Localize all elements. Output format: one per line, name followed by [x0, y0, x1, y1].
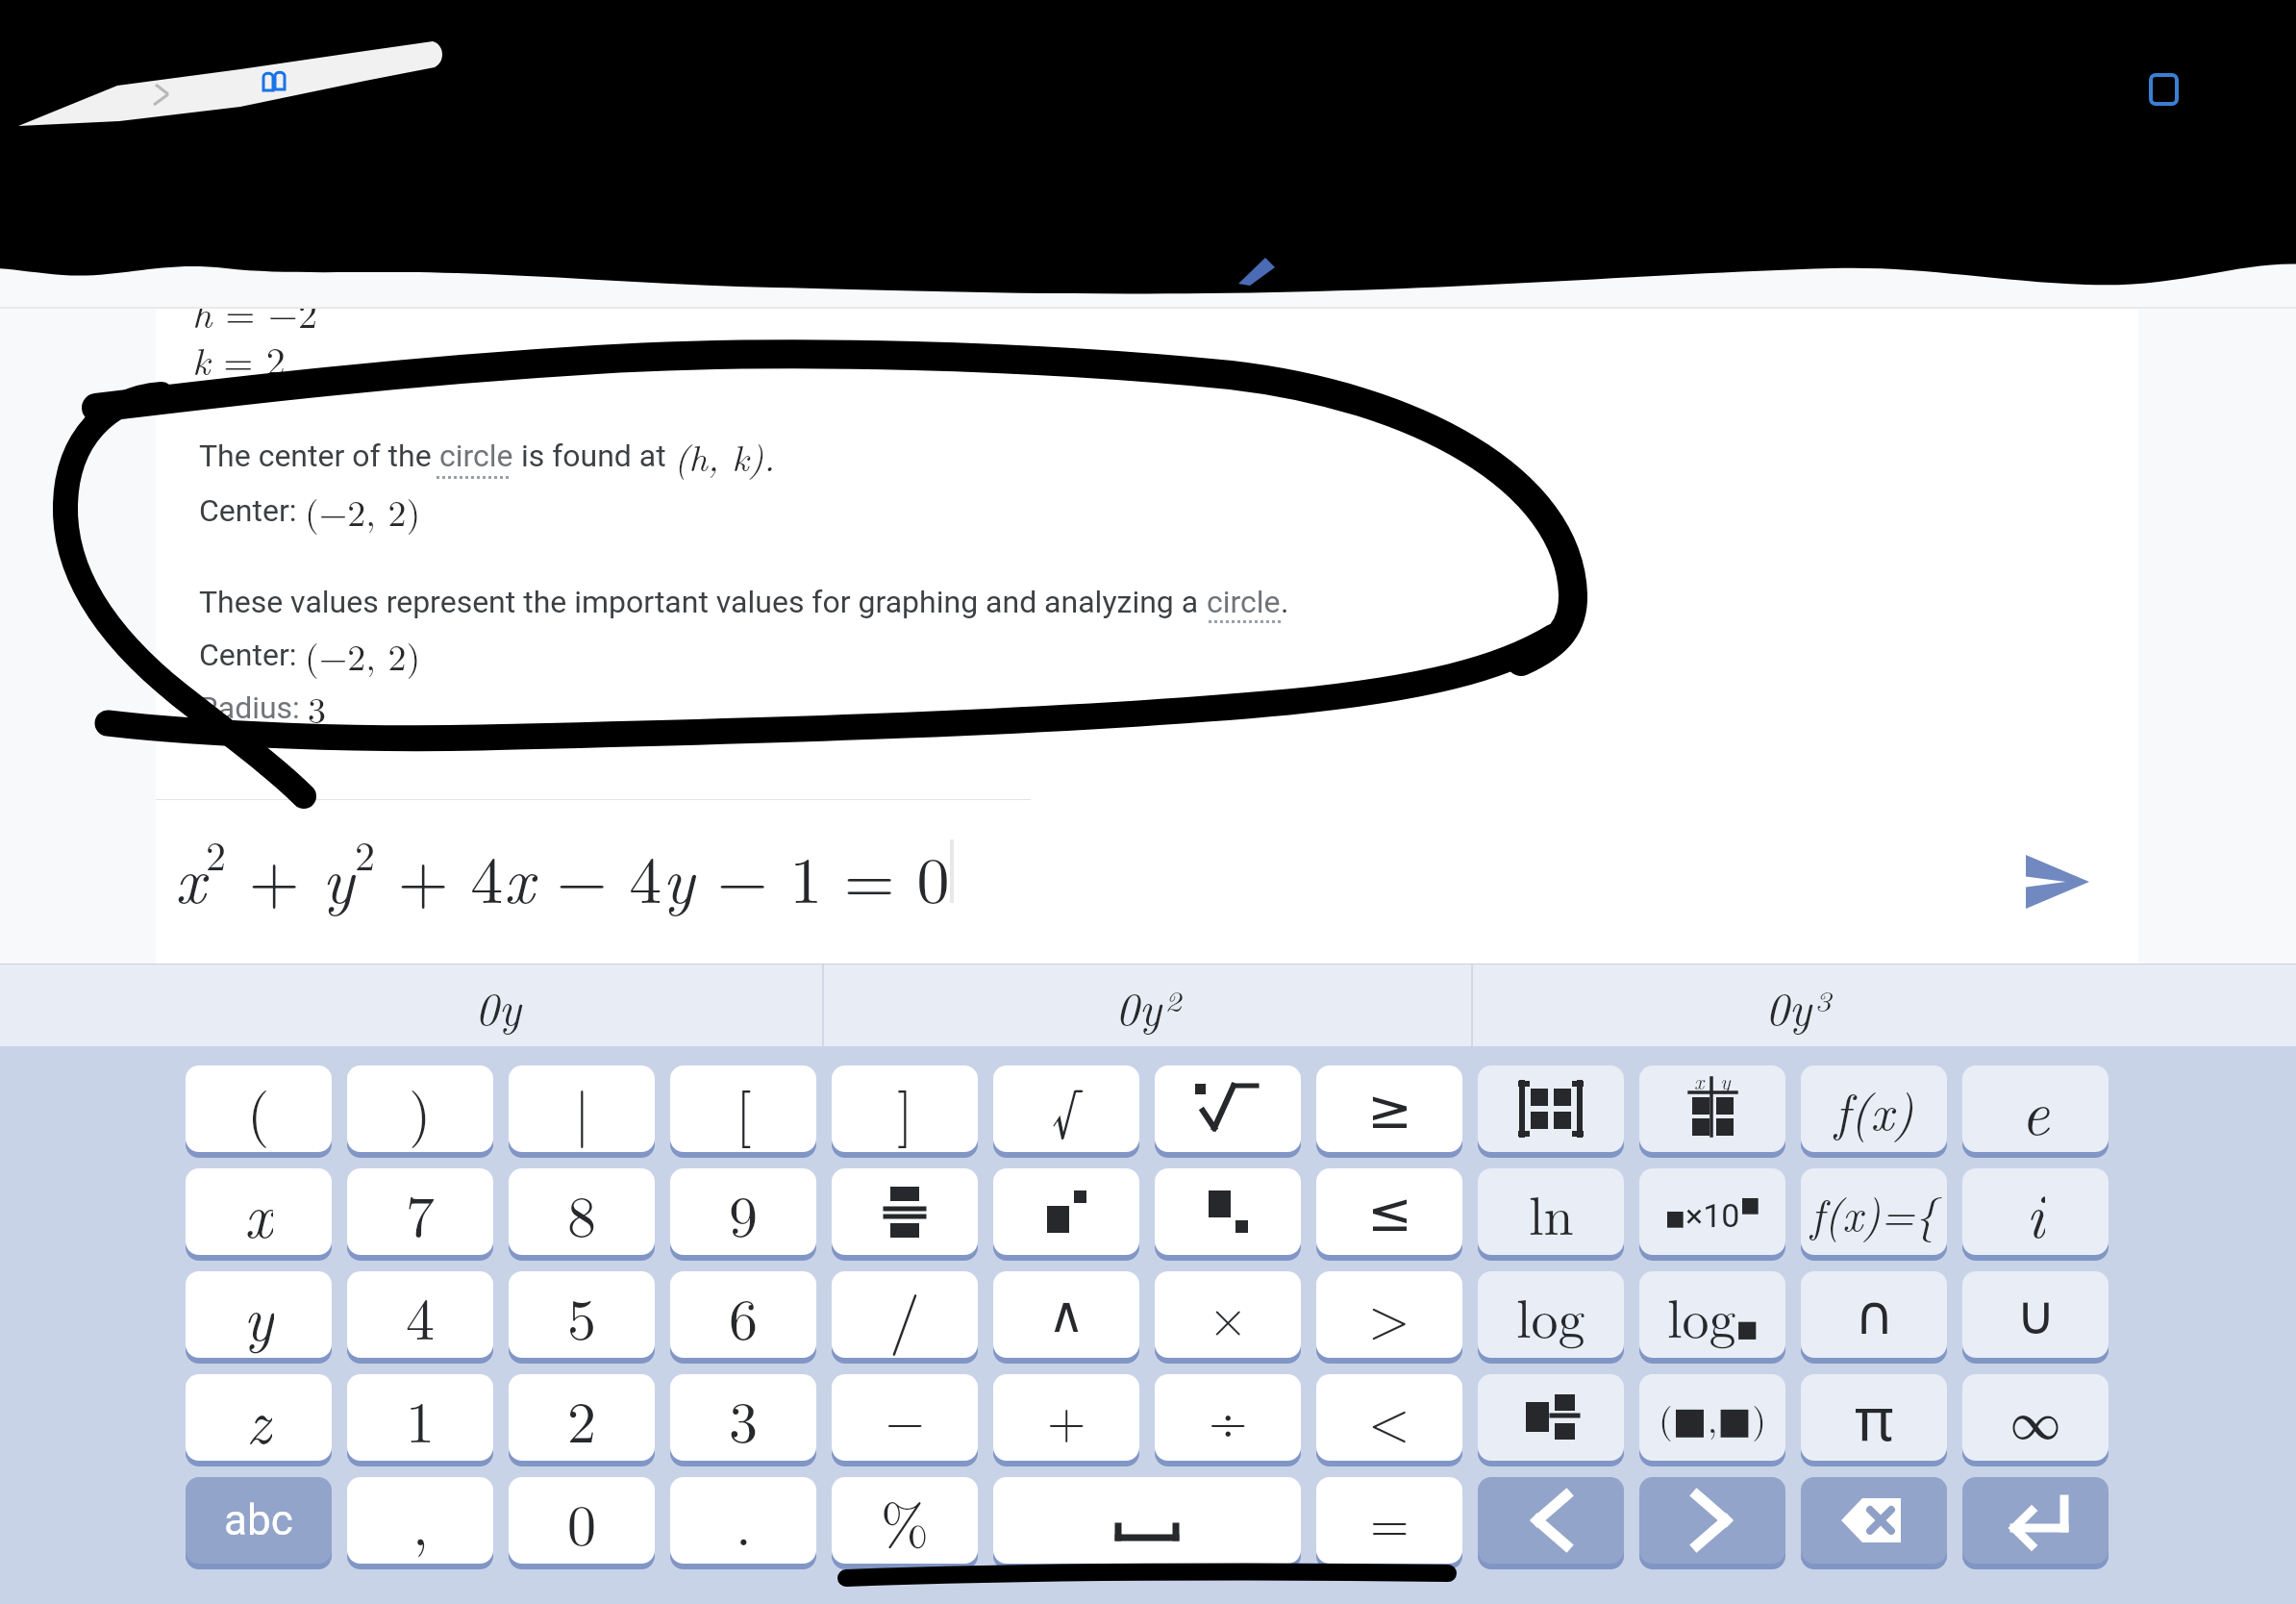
button[interactable]: 9: [670, 1168, 816, 1261]
staticText: %: [881, 1480, 929, 1562]
button[interactable]: 7: [347, 1168, 493, 1261]
staticText: x: [1694, 1065, 1705, 1095]
button[interactable]: 4: [347, 1271, 493, 1364]
staticText: ≥: [1367, 1078, 1412, 1140]
staticText: π: [1855, 1377, 1894, 1458]
button[interactable]: 0y: [173, 965, 822, 1046]
staticText: ∧: [1048, 1286, 1086, 1344]
button[interactable]: ≤: [1316, 1168, 1462, 1261]
button[interactable]: Enter: [1962, 1477, 2109, 1569]
staticText: x: [504, 829, 535, 921]
staticText: = −2: [212, 285, 317, 339]
button[interactable]: z: [186, 1374, 332, 1466]
button[interactable]: x: [186, 1168, 332, 1261]
staticText: ×: [1209, 1279, 1248, 1350]
button[interactable]: >: [1316, 1271, 1462, 1364]
button[interactable]: +: [993, 1374, 1139, 1466]
button[interactable]: ∞: [1962, 1374, 2109, 1466]
staticText: 3: [729, 1377, 758, 1459]
staticText: −: [886, 1382, 925, 1453]
button[interactable]: [: [670, 1065, 816, 1158]
staticText: ■: [1665, 1206, 1685, 1231]
button[interactable]: ×: [1155, 1271, 1301, 1364]
button[interactable]: 0y²: [824, 965, 1471, 1046]
staticText: (−2, 2): [305, 485, 421, 537]
staticText: circle: [439, 438, 513, 474]
staticText: 5: [567, 1274, 596, 1356]
button[interactable]: ln: [1478, 1168, 1624, 1261]
staticText: k: [192, 332, 211, 387]
button[interactable]: Subscript: [1155, 1168, 1301, 1261]
staticText: ∞: [2010, 1382, 2061, 1453]
staticText: <: [1368, 1380, 1410, 1456]
button[interactable]: −: [832, 1374, 978, 1466]
button[interactable]: Exponent: [993, 1168, 1139, 1261]
button[interactable]: i: [1962, 1168, 2109, 1261]
staticText: 0: [567, 1480, 596, 1562]
button[interactable]: √: [993, 1065, 1139, 1158]
button[interactable]: ∧: [993, 1271, 1139, 1364]
button[interactable]: log: [1639, 1271, 1785, 1364]
staticText: ×10: [1685, 1196, 1740, 1235]
staticText: 2: [567, 1377, 596, 1459]
button[interactable]: (: [186, 1065, 332, 1158]
staticText: ≤: [1367, 1181, 1412, 1243]
button[interactable]: π: [1801, 1374, 1947, 1466]
button[interactable]: e: [1962, 1065, 2109, 1158]
button[interactable]: Fraction: [832, 1168, 978, 1261]
staticText: y: [322, 829, 355, 921]
button[interactable]: Backspace: [1801, 1477, 1947, 1569]
button[interactable]: (■,■): [1639, 1374, 1785, 1466]
button[interactable]: .: [670, 1477, 816, 1569]
button[interactable]: ∪: [1962, 1271, 2109, 1364]
button[interactable]: y: [186, 1271, 332, 1364]
button[interactable]: 5: [509, 1271, 655, 1364]
button[interactable]: ■: [1639, 1168, 1785, 1261]
button[interactable]: 6: [670, 1271, 816, 1364]
button[interactable]: x: [1639, 1065, 1785, 1158]
button[interactable]: ,: [347, 1477, 493, 1569]
button[interactable]: ): [347, 1065, 493, 1158]
staticText: (■,■): [1659, 1391, 1766, 1443]
button[interactable]: 3: [670, 1374, 816, 1466]
button[interactable]: log: [1478, 1271, 1624, 1364]
button[interactable]: ∩: [1801, 1271, 1947, 1364]
button[interactable]: 0y³: [1473, 965, 2120, 1046]
button[interactable]: <: [1316, 1374, 1462, 1466]
staticText: Radius:: [199, 689, 308, 726]
button[interactable]: Space: [993, 1477, 1301, 1569]
staticText: >: [1368, 1277, 1410, 1353]
button[interactable]: 2: [509, 1374, 655, 1466]
staticText: ■: [1736, 1316, 1759, 1342]
button[interactable]: f(x)={: [1801, 1168, 1947, 1261]
button[interactable]: %: [832, 1477, 978, 1569]
button[interactable]: |: [509, 1065, 655, 1158]
button[interactable]: 0: [509, 1477, 655, 1569]
staticText: 2: [206, 825, 227, 883]
staticText: [: [736, 1068, 752, 1150]
button[interactable]: 8: [509, 1168, 655, 1261]
staticText: +: [227, 829, 322, 921]
button[interactable]: 1: [347, 1374, 493, 1466]
button[interactable]: Move cursor right: [1639, 1477, 1785, 1569]
button[interactable]: abc: [186, 1477, 332, 1569]
button[interactable]: f(x): [1801, 1065, 1947, 1158]
button[interactable]: /: [832, 1271, 978, 1364]
staticText: ∩: [1855, 1284, 1894, 1346]
staticText: 2: [355, 825, 376, 883]
button[interactable]: =: [1316, 1477, 1462, 1569]
staticText: 1: [406, 1377, 435, 1459]
button[interactable]: Move cursor left: [1478, 1477, 1624, 1569]
button[interactable]: ÷: [1155, 1374, 1301, 1466]
staticText: 0y: [475, 973, 521, 1039]
staticText: Center:: [199, 637, 305, 673]
button[interactable]: Matrix: [1478, 1065, 1624, 1158]
button[interactable]: ]: [832, 1065, 978, 1158]
button[interactable]: ≥: [1316, 1065, 1462, 1158]
staticText: 0y³: [1765, 973, 1829, 1039]
button[interactable]: Nth root: [1155, 1065, 1301, 1158]
staticText: =: [1370, 1485, 1410, 1556]
staticText: i: [2026, 1168, 2045, 1255]
button[interactable]: Mixed number: [1478, 1374, 1624, 1466]
button[interactable]: Send: [2000, 829, 2115, 935]
